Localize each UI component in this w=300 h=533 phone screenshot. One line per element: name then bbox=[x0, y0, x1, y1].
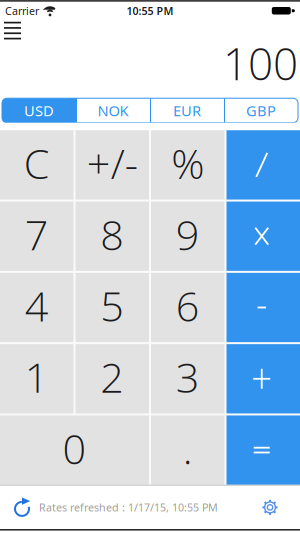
staticText: 9 bbox=[176, 206, 200, 262]
staticText: Rates refreshed : 1/17/15, 10:55 PM bbox=[39, 500, 218, 514]
staticText: 10:55 PM bbox=[126, 4, 173, 18]
button[interactable]: Refresh rates bbox=[0, 498, 31, 516]
button[interactable]: USD bbox=[2, 98, 76, 123]
staticText: 100 bbox=[223, 33, 298, 93]
button[interactable]: 2 bbox=[75, 344, 149, 413]
staticText: 1 bbox=[25, 349, 49, 405]
button[interactable]: NOK bbox=[76, 98, 150, 123]
button[interactable]: 4 bbox=[0, 273, 73, 342]
button[interactable]: 7 bbox=[0, 202, 73, 271]
button[interactable]: +/- bbox=[75, 130, 149, 199]
button[interactable]: 1 bbox=[0, 344, 73, 413]
button[interactable]: 6 bbox=[151, 273, 224, 342]
staticText: USD bbox=[24, 101, 54, 120]
button[interactable]: % bbox=[151, 130, 224, 199]
button[interactable]: Equals bbox=[226, 415, 300, 485]
button[interactable]: Subtract bbox=[226, 273, 300, 342]
button[interactable]: 9 bbox=[151, 202, 224, 271]
staticText: GBP bbox=[246, 101, 276, 120]
button[interactable]: Settings bbox=[261, 498, 300, 516]
button[interactable]: Add bbox=[226, 344, 300, 413]
staticText: 3 bbox=[176, 349, 200, 405]
staticText: 7 bbox=[25, 206, 49, 262]
button[interactable]: C bbox=[0, 130, 73, 199]
staticText: . bbox=[183, 420, 193, 476]
button[interactable]: Divide bbox=[226, 130, 300, 199]
staticText: +/- bbox=[87, 135, 138, 191]
staticText: 4 bbox=[25, 277, 49, 334]
staticText: Carrier bbox=[5, 4, 39, 18]
staticText: 2 bbox=[100, 349, 124, 405]
button[interactable]: . bbox=[151, 415, 224, 485]
staticText: NOK bbox=[97, 101, 128, 120]
staticText: 6 bbox=[176, 277, 200, 334]
staticText: % bbox=[171, 135, 204, 191]
staticText: C bbox=[24, 135, 50, 191]
button[interactable]: 8 bbox=[75, 202, 149, 271]
button[interactable]: GBP bbox=[224, 98, 298, 123]
button[interactable]: EUR bbox=[150, 98, 224, 123]
button[interactable]: Multiply bbox=[226, 202, 300, 271]
staticText: 0 bbox=[62, 420, 86, 476]
button[interactable]: Menu bbox=[0, 20, 21, 45]
staticText: EUR bbox=[173, 101, 201, 120]
staticText: 8 bbox=[100, 206, 124, 262]
button[interactable]: 0 bbox=[0, 415, 149, 485]
staticText: 5 bbox=[100, 277, 124, 334]
button[interactable]: 5 bbox=[75, 273, 149, 342]
button[interactable]: 3 bbox=[151, 344, 224, 413]
